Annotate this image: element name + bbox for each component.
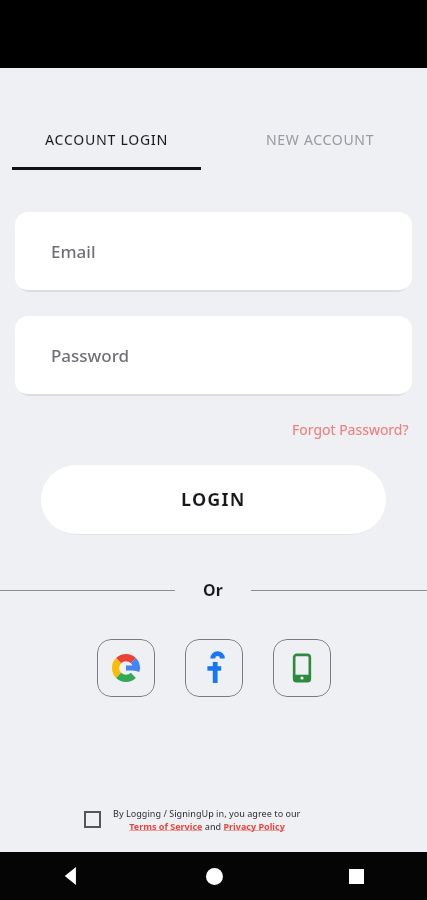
button[interactable]: NEW ACCOUNT — [213, 130, 427, 149]
button[interactable]: Email — [15, 212, 412, 290]
button[interactable]: Sign in with Facebook — [185, 639, 243, 697]
button[interactable]: Agree to terms checkbox — [84, 811, 101, 828]
staticText: Email — [51, 240, 96, 263]
button[interactable]: Password — [15, 316, 412, 394]
staticText: LOGIN — [181, 487, 246, 512]
staticText: Forgot Password? — [292, 420, 409, 439]
staticText: By Logging / SigningUp in, you agree to … — [113, 807, 301, 819]
staticText: NEW ACCOUNT — [266, 130, 375, 149]
staticText: Or — [203, 579, 223, 601]
staticText: ACCOUNT LOGIN — [45, 130, 169, 149]
button[interactable]: Sign in with Google — [97, 639, 155, 697]
button[interactable]: Back — [0, 852, 143, 900]
staticText: Terms of Service and Privacy Policy — [129, 820, 285, 832]
button[interactable]: Forgot Password? — [274, 416, 427, 443]
button[interactable]: LOGIN — [41, 465, 386, 534]
button[interactable]: Recent apps — [285, 852, 427, 900]
staticText: Password — [51, 344, 130, 367]
button[interactable]: ACCOUNT LOGIN — [0, 130, 213, 170]
button[interactable]: Sign in with phone number — [273, 639, 331, 697]
button[interactable]: Home — [143, 852, 285, 900]
button[interactable]: Terms of Service and Privacy Policy — [129, 820, 285, 832]
